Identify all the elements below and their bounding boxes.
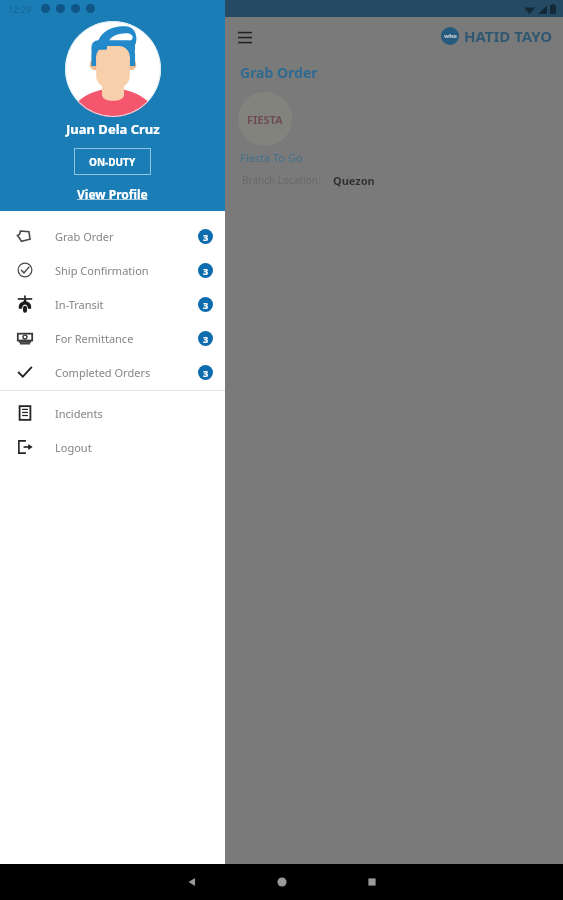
button[interactable]: Recents xyxy=(366,876,378,888)
button[interactable]: Home xyxy=(276,876,288,888)
staticText: Ship Confirmation xyxy=(55,263,149,278)
staticText: Juan Dela Cruz xyxy=(66,120,160,138)
button[interactable]: Incidents xyxy=(0,396,225,430)
button[interactable]: View Profile xyxy=(77,186,148,202)
staticText: FIESTA xyxy=(247,112,283,127)
staticText: 3 xyxy=(203,299,209,311)
staticText: 3 xyxy=(203,265,209,277)
staticText: In-Transit xyxy=(55,297,104,312)
button[interactable]: Logout xyxy=(0,430,225,464)
staticText: Completed Orders xyxy=(55,365,151,380)
staticText: 12:29 xyxy=(8,3,32,15)
staticText: Quezon xyxy=(333,173,375,188)
staticText: who xyxy=(444,32,457,40)
button[interactable]: In-Transit xyxy=(0,287,225,321)
button[interactable]: Ship Confirmation xyxy=(0,253,225,287)
staticText: Incidents xyxy=(55,406,103,421)
staticText: For Remittance xyxy=(55,331,134,346)
button[interactable]: ON-DUTY xyxy=(74,148,151,175)
staticText: 3 xyxy=(203,231,209,243)
staticText: Grab Order xyxy=(55,229,114,244)
staticText: Grab Order xyxy=(240,63,318,82)
staticText: ON-DUTY xyxy=(89,155,136,169)
staticText: HATID TAYO xyxy=(464,26,553,46)
staticText: Logout xyxy=(55,440,92,455)
staticText: Branch Location: xyxy=(242,173,321,187)
button[interactable]: For Remittance xyxy=(0,321,225,355)
button[interactable]: Completed Orders xyxy=(0,355,225,389)
button[interactable]: Back xyxy=(185,875,199,889)
button[interactable]: Open navigation drawer xyxy=(232,23,258,49)
staticText: 3 xyxy=(203,367,209,379)
staticText: View Profile xyxy=(77,186,148,202)
staticText: 3 xyxy=(203,333,209,345)
button[interactable]: Grab Order xyxy=(0,219,225,253)
staticText: Fiesta To Go xyxy=(240,150,303,165)
